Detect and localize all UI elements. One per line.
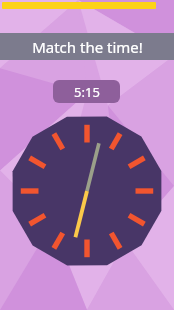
staticText: Match the time! [32,37,143,57]
staticText: 5:15 [74,83,100,101]
button[interactable]: Clock face showing the current time [10,114,164,268]
button[interactable]: Match the time! [0,33,174,60]
button[interactable]: 5:15 [53,80,120,103]
